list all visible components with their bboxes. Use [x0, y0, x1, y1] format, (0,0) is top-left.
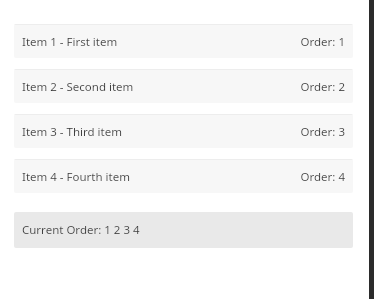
staticText: Order: 3 — [300, 124, 345, 140]
staticText: Current Order: 1 2 3 4 — [22, 222, 140, 238]
staticText: Order: 4 — [300, 169, 345, 185]
staticText: Item 3 - Third item — [22, 124, 122, 140]
staticText: Item 4 - Fourth item — [22, 169, 130, 185]
staticText: Item 2 - Second item — [22, 79, 134, 95]
button[interactable]: Item 1 - First item — [14, 24, 353, 58]
staticText: Item 1 - First item — [22, 34, 118, 50]
button[interactable]: Item 4 - Fourth item — [14, 159, 353, 193]
button[interactable]: Current Order: 1 2 3 4 — [14, 212, 353, 248]
button[interactable]: Item 3 - Third item — [14, 114, 353, 148]
staticText: Order: 1 — [300, 34, 345, 50]
staticText: Order: 2 — [300, 79, 345, 95]
button[interactable]: Item 2 - Second item — [14, 69, 353, 103]
